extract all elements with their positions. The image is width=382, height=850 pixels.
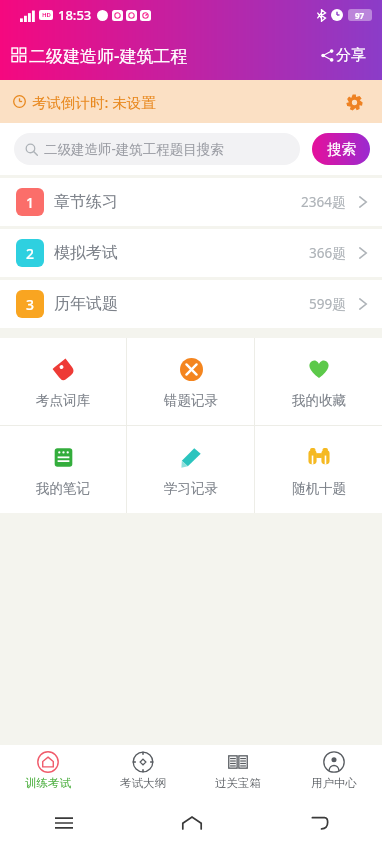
button[interactable]: 考点词库 xyxy=(0,338,126,425)
staticText: 366题 xyxy=(309,244,346,262)
staticText: 随机十题 xyxy=(292,480,346,497)
button[interactable]: 错题记录 xyxy=(127,338,254,425)
staticText: 2 xyxy=(26,244,35,263)
staticText: 历年试题 xyxy=(54,294,118,314)
staticText: 考点词库 xyxy=(36,392,90,409)
staticText: 我的笔记 xyxy=(36,480,90,497)
button[interactable]: 训练考试 xyxy=(0,745,95,795)
staticText: 过关宝箱 xyxy=(215,776,261,790)
staticText: 我的收藏 xyxy=(292,392,346,409)
staticText: 学习记录 xyxy=(164,480,218,497)
staticText: 3 xyxy=(26,295,35,314)
staticText: 2364题 xyxy=(301,193,346,211)
staticText: 用户中心 xyxy=(311,776,357,790)
staticText: 18:53 xyxy=(58,6,92,24)
button[interactable]: Home xyxy=(172,803,212,843)
button[interactable]: 分享 xyxy=(317,42,370,69)
button[interactable]: 搜索 xyxy=(312,133,370,165)
button[interactable]: 我的笔记 xyxy=(0,426,126,513)
button[interactable]: 1 xyxy=(0,178,382,226)
staticText: 模拟考试 xyxy=(54,243,118,263)
button[interactable]: 过关宝箱 xyxy=(190,745,286,795)
staticText: 考试大纲 xyxy=(120,776,166,790)
button[interactable]: 二级建造师-建筑工程题目搜索 xyxy=(14,133,300,165)
staticText: 599题 xyxy=(309,295,346,313)
staticText: 错题记录 xyxy=(164,392,218,409)
button[interactable]: 随机十题 xyxy=(255,426,382,513)
button[interactable]: 3 xyxy=(0,280,382,328)
button[interactable]: 我的收藏 xyxy=(255,338,382,425)
staticText: 97 xyxy=(355,10,365,20)
staticText: 二级建造师-建筑工程题目搜索 xyxy=(44,140,224,158)
button[interactable]: 2 xyxy=(0,229,382,277)
staticText: 二级建造师-建筑工程 xyxy=(29,44,188,67)
button[interactable]: 考试大纲 xyxy=(95,745,190,795)
button[interactable]: 设置 xyxy=(339,87,369,117)
staticText: 训练考试 xyxy=(25,776,71,790)
button[interactable]: Back xyxy=(299,803,339,843)
staticText: 1 xyxy=(26,193,35,212)
staticText: 考试倒计时: 未设置 xyxy=(32,92,156,112)
staticText: 分享 xyxy=(336,46,366,65)
staticText: HD xyxy=(42,11,51,19)
staticText: 章节练习 xyxy=(54,192,118,212)
staticText: 搜索 xyxy=(327,140,356,158)
button[interactable]: Recent apps xyxy=(44,803,84,843)
button[interactable]: 用户中心 xyxy=(286,745,382,795)
button[interactable]: 学习记录 xyxy=(127,426,254,513)
